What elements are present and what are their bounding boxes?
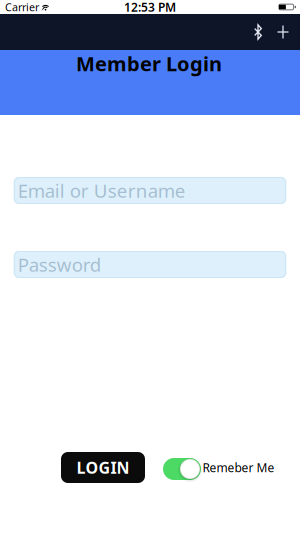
- staticText: Carrier: [5, 0, 39, 14]
- staticText: Member Login: [76, 50, 222, 77]
- staticText: Password: [18, 252, 101, 277]
- staticText: Email or Username: [18, 178, 186, 203]
- staticText: LOGIN: [76, 457, 129, 478]
- button[interactable]: Bluetooth: [246, 19, 270, 45]
- button[interactable]: LOGIN: [61, 452, 145, 483]
- staticText: 12:53 PM: [124, 0, 176, 15]
- button[interactable]: Add: [270, 19, 296, 45]
- button[interactable]: Remeber Me: [163, 458, 201, 480]
- staticText: Remeber Me: [202, 459, 274, 475]
